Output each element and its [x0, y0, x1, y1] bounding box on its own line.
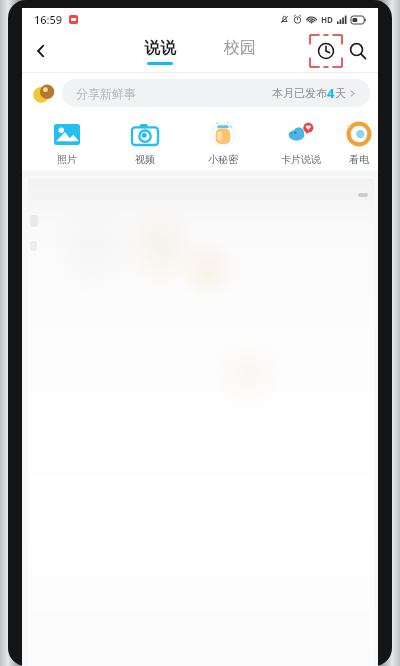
staticText: 照片 — [57, 153, 77, 166]
staticText: 视频 — [135, 153, 155, 166]
staticText: 说说 — [144, 38, 176, 58]
button[interactable]: 照片 — [28, 119, 106, 166]
button[interactable]: 小秘密 — [184, 119, 262, 166]
staticText: HD — [321, 14, 333, 25]
staticText: 校园 — [224, 38, 256, 58]
staticText: 看电 — [349, 153, 369, 166]
button[interactable]: 看电 — [340, 119, 378, 166]
staticText: 16:59 — [34, 12, 63, 27]
button[interactable]: History — [310, 35, 342, 67]
button[interactable]: Avatar — [30, 79, 58, 107]
staticText: 卡片说说 — [281, 153, 321, 166]
button[interactable]: 说说 — [136, 38, 184, 65]
button[interactable]: 视频 — [106, 119, 184, 166]
button[interactable]: 校园 — [216, 38, 264, 65]
staticText: 分享新鲜事 — [76, 86, 136, 101]
button[interactable]: 分享新鲜事 — [62, 79, 370, 107]
staticText: 本月已发布 — [272, 86, 327, 100]
staticText: 小秘密 — [208, 153, 238, 166]
button[interactable]: Search — [342, 35, 374, 67]
staticText: 天 — [335, 86, 346, 100]
button[interactable]: 卡片说说 — [262, 119, 340, 166]
staticText: 4 — [327, 84, 335, 102]
button[interactable]: Back — [22, 32, 60, 70]
